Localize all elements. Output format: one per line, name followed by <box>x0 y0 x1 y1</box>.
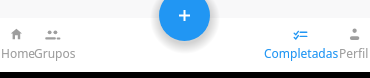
button[interactable]: Completadas <box>256 27 346 60</box>
staticText: Completadas <box>264 45 339 61</box>
button[interactable]: Add new task <box>159 0 210 41</box>
button[interactable]: Perfil <box>309 27 370 60</box>
button[interactable]: Home <box>0 27 63 60</box>
staticText: Grupos <box>34 45 76 61</box>
button[interactable]: Grupos <box>10 27 100 60</box>
staticText: Home <box>1 45 36 61</box>
staticText: Perfil <box>339 45 369 61</box>
